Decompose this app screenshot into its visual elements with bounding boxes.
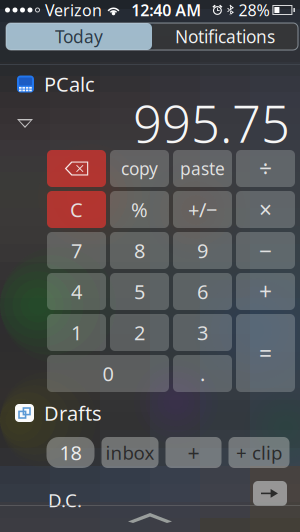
button[interactable]: ÷ (236, 150, 295, 187)
button[interactable]: × (236, 191, 295, 228)
button[interactable]: = (236, 314, 295, 392)
button[interactable]: 8 (110, 232, 169, 269)
button[interactable]: 7 (47, 232, 106, 269)
staticText: 995.75 (133, 89, 290, 157)
button[interactable]: 1 (47, 314, 106, 351)
button[interactable]: 9 (173, 232, 232, 269)
staticText: % (131, 196, 148, 223)
button[interactable]: 5 (110, 273, 169, 310)
staticText: + (187, 438, 199, 467)
button[interactable]: Collapse (17, 119, 33, 128)
button[interactable]: 4 (47, 273, 106, 310)
button[interactable]: + (236, 273, 295, 310)
staticText: C (70, 196, 83, 223)
button[interactable]: Send (253, 481, 287, 506)
button[interactable]: copy (110, 150, 169, 187)
staticText: 28% (238, 0, 269, 21)
button[interactable]: inbox (101, 437, 158, 468)
button[interactable]: +/− (173, 191, 232, 228)
staticText: 6 (197, 278, 208, 305)
button[interactable]: paste (173, 150, 232, 187)
button[interactable]: Today (6, 23, 152, 50)
staticText: 12:40 AM (131, 0, 201, 21)
staticText: Verizon (45, 0, 102, 21)
staticText: = (259, 338, 272, 368)
staticText: 2 (134, 319, 145, 346)
staticText: + (259, 276, 272, 306)
button[interactable]: 18 (46, 437, 94, 468)
staticText: ÷ (259, 153, 272, 183)
staticText: × (259, 194, 272, 224)
staticText: 9 (197, 237, 208, 264)
staticText: 5 (134, 278, 145, 305)
staticText: 0 (102, 360, 113, 387)
staticText: 4 (71, 278, 82, 305)
staticText: − (259, 235, 272, 265)
button[interactable]: 2 (110, 314, 169, 351)
button[interactable]: 0 (47, 355, 169, 392)
button[interactable]: . (173, 355, 232, 392)
staticText: Today (55, 25, 103, 48)
button[interactable]: − (236, 232, 295, 269)
staticText: Notifications (175, 25, 275, 48)
button[interactable]: Notifications (152, 23, 298, 50)
staticText: PCalc (44, 71, 95, 97)
staticText: + clip (236, 440, 282, 465)
staticText: 8 (134, 237, 145, 264)
button[interactable]: 3 (173, 314, 232, 351)
button[interactable]: Drafts (15, 400, 280, 426)
staticText: 3 (197, 319, 208, 346)
staticText: paste (180, 157, 225, 180)
staticText: D.C. (48, 488, 82, 512)
button[interactable]: + clip (228, 437, 289, 468)
button[interactable] (47, 150, 106, 187)
staticText: 18 (59, 439, 81, 466)
button[interactable]: + (165, 437, 221, 468)
staticText: +/− (188, 196, 217, 223)
button[interactable]: % (110, 191, 169, 228)
button[interactable]: 6 (173, 273, 232, 310)
staticText: Drafts (44, 400, 102, 426)
button[interactable]: PCalc (17, 71, 282, 97)
staticText: . (200, 360, 205, 387)
staticText: copy (121, 157, 158, 180)
staticText: inbox (105, 440, 154, 465)
button[interactable]: C (47, 191, 106, 228)
staticText: 7 (71, 237, 82, 264)
staticText: 1 (71, 319, 82, 346)
